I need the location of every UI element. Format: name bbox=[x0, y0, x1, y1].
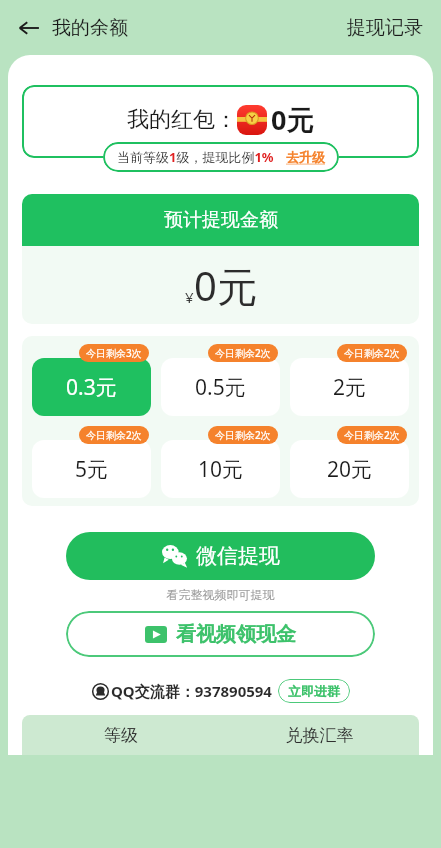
button[interactable]: Back bbox=[14, 12, 132, 44]
button[interactable]: 2元 bbox=[290, 358, 409, 416]
button[interactable]: 20元 bbox=[290, 440, 409, 498]
staticText: 2元 bbox=[333, 373, 367, 402]
staticText: 今日剩余3次 bbox=[86, 346, 142, 360]
staticText: 我的红包： bbox=[127, 106, 237, 134]
staticText: 去升级 bbox=[286, 149, 325, 165]
button[interactable]: 立即进群 bbox=[278, 679, 350, 703]
staticText: 0.3元 bbox=[66, 373, 117, 402]
staticText: 看完整视频即可提现 bbox=[8, 587, 433, 602]
staticText: 0.5元 bbox=[195, 373, 246, 402]
staticText: 立即进群 bbox=[288, 683, 340, 699]
button[interactable]: 5元 bbox=[32, 440, 151, 498]
staticText: 0元 bbox=[194, 258, 257, 313]
staticText: 今日剩余2次 bbox=[215, 346, 271, 360]
staticText: ¥ bbox=[185, 287, 194, 307]
staticText: 今日剩余2次 bbox=[344, 428, 400, 442]
staticText: 看视频领现金 bbox=[176, 622, 296, 647]
staticText: 预计提现金额 bbox=[164, 208, 278, 232]
staticText: 微信提现 bbox=[196, 543, 280, 569]
staticText: 今日剩余2次 bbox=[86, 428, 142, 442]
staticText: QQ交流群：937890594 bbox=[111, 681, 272, 701]
other: Back bbox=[18, 17, 40, 39]
staticText: 今日剩余2次 bbox=[344, 346, 400, 360]
staticText: 10元 bbox=[198, 455, 244, 484]
button[interactable]: 0.3元 bbox=[32, 358, 151, 416]
button[interactable]: 0.5元 bbox=[161, 358, 280, 416]
button[interactable]: 10元 bbox=[161, 440, 280, 498]
staticText: 我的余额 bbox=[52, 16, 128, 40]
staticText: 今日剩余2次 bbox=[215, 428, 271, 442]
button[interactable]: 微信提现 bbox=[66, 532, 375, 580]
staticText: 兑换汇率 bbox=[220, 725, 419, 746]
staticText: 5元 bbox=[75, 455, 109, 484]
staticText: 0元 bbox=[271, 101, 314, 138]
staticText: 20元 bbox=[327, 455, 373, 484]
button[interactable]: 当前等级1级，提现比例1% bbox=[103, 142, 339, 172]
staticText: 提现记录 bbox=[347, 16, 423, 40]
button[interactable]: 提现记录 bbox=[343, 12, 427, 44]
button[interactable]: 看视频领现金 bbox=[66, 611, 375, 657]
staticText: 等级 bbox=[22, 725, 220, 746]
staticText: 当前等级1级，提现比例1% bbox=[117, 148, 274, 166]
